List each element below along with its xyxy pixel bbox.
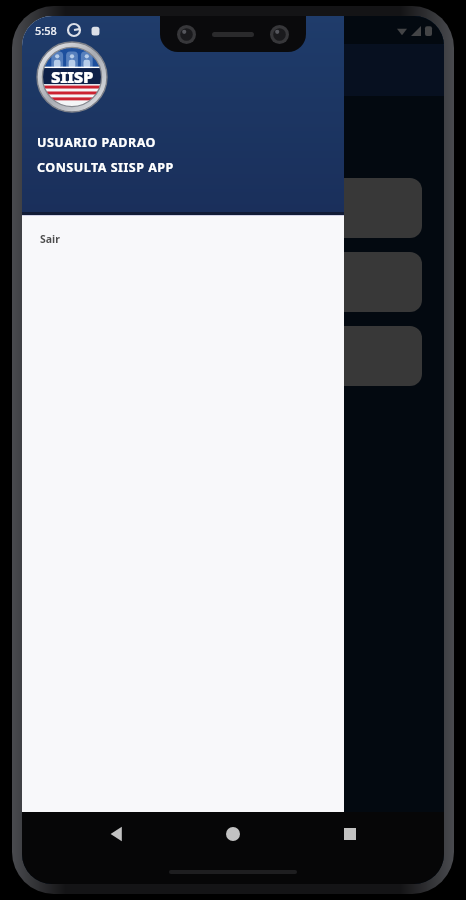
button[interactable]: Help bbox=[44, 326, 422, 386]
button[interactable]: Information bbox=[44, 252, 422, 312]
staticText: USUARIO PADRAO bbox=[37, 134, 156, 151]
button[interactable]: Close navigation drawer bbox=[344, 16, 444, 812]
staticText: Sair bbox=[40, 232, 60, 246]
button[interactable]: Search bbox=[44, 178, 422, 238]
staticText: CONSULTA SIISP APP bbox=[37, 159, 174, 176]
button[interactable]: Sair bbox=[22, 216, 344, 262]
staticText: SIISP bbox=[51, 65, 93, 87]
button[interactable]: Back bbox=[95, 812, 139, 856]
staticText: 5:58 bbox=[35, 23, 57, 38]
button[interactable]: Recent apps bbox=[328, 812, 372, 856]
button[interactable]: Home bbox=[211, 812, 255, 856]
